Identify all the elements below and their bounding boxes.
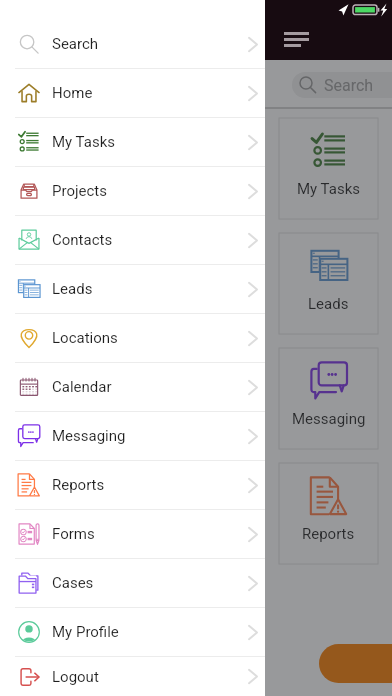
staticText: Leads: [52, 280, 93, 298]
button[interactable]: Add: [319, 644, 392, 683]
button[interactable]: Logout: [0, 656, 265, 696]
staticText: Messaging: [52, 427, 126, 445]
button[interactable]: Reports: [279, 463, 378, 564]
staticText: Logout: [52, 668, 99, 686]
staticText: Reports: [302, 525, 355, 543]
button[interactable]: Messaging: [279, 348, 378, 449]
button[interactable]: My Tasks: [0, 117, 265, 166]
staticText: Cases: [52, 574, 94, 592]
button[interactable]: Search: [292, 72, 392, 98]
button[interactable]: Leads: [279, 233, 378, 334]
staticText: Search: [324, 76, 374, 95]
staticText: Home: [52, 84, 93, 102]
button[interactable]: Cases: [0, 558, 265, 607]
button[interactable]: Leads: [0, 264, 265, 313]
staticText: Locations: [52, 329, 118, 347]
staticText: Messaging: [292, 410, 366, 428]
staticText: Projects: [52, 182, 107, 200]
button[interactable]: Open navigation menu: [280, 26, 314, 52]
button[interactable]: Locations: [0, 313, 265, 362]
staticText: Contacts: [52, 231, 113, 249]
staticText: Leads: [308, 295, 349, 313]
button[interactable]: Forms: [0, 509, 265, 558]
button[interactable]: Calendar: [0, 362, 265, 411]
staticText: My Tasks: [297, 180, 360, 198]
button[interactable]: Projects: [0, 166, 265, 215]
staticText: My Profile: [52, 623, 119, 641]
button[interactable]: My Tasks: [279, 118, 378, 219]
staticText: Reports: [52, 476, 105, 494]
button[interactable]: Search: [0, 19, 265, 68]
button[interactable]: Home: [0, 68, 265, 117]
staticText: My Tasks: [52, 133, 115, 151]
staticText: Search: [52, 35, 99, 53]
staticText: Calendar: [52, 378, 112, 396]
button[interactable]: Reports: [0, 460, 265, 509]
button[interactable]: Contacts: [0, 215, 265, 264]
button[interactable]: My Profile: [0, 607, 265, 656]
staticText: Forms: [52, 525, 95, 543]
button[interactable]: Messaging: [0, 411, 265, 460]
